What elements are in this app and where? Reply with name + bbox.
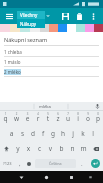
button[interactable]: f bbox=[38, 126, 48, 141]
staticText: 6 bbox=[53, 112, 63, 116]
button[interactable]: 7 bbox=[63, 111, 73, 126]
button[interactable] bbox=[40, 24, 49, 32]
button[interactable]: j bbox=[68, 126, 78, 141]
button[interactable]: d bbox=[28, 126, 38, 141]
button[interactable]: g bbox=[48, 126, 58, 141]
staticText: 8 bbox=[73, 112, 83, 116]
button[interactable]: 1 máslo bbox=[4, 59, 99, 69]
staticText: Všechny bbox=[20, 12, 38, 18]
staticText: r bbox=[33, 114, 43, 123]
button[interactable]: Čeština bbox=[35, 159, 76, 168]
button[interactable]: 3 bbox=[22, 111, 33, 126]
staticText: 4 bbox=[33, 112, 43, 116]
staticText: Čeština bbox=[49, 161, 62, 166]
staticText: a bbox=[6, 129, 17, 138]
button[interactable]: n bbox=[67, 141, 78, 156]
staticText: 2 mléko bbox=[4, 69, 21, 75]
button[interactable]: ?123 bbox=[0, 156, 15, 171]
staticText: v bbox=[45, 144, 56, 153]
button[interactable]: 6 bbox=[53, 111, 63, 126]
button[interactable]: k bbox=[78, 126, 88, 141]
button[interactable]: Emoji bbox=[24, 156, 34, 171]
button[interactable]: Uložit bbox=[58, 9, 72, 23]
staticText: 3 bbox=[22, 112, 33, 116]
button[interactable]: Navigace bbox=[3, 10, 15, 22]
button[interactable]: 9 bbox=[83, 111, 93, 126]
staticText: Nákupní seznam bbox=[4, 36, 48, 43]
staticText: x bbox=[23, 144, 34, 153]
button[interactable]: h bbox=[58, 126, 68, 141]
button[interactable] bbox=[30, 24, 40, 32]
button[interactable]: Smazat bbox=[89, 141, 103, 156]
button[interactable]: . bbox=[77, 156, 87, 171]
staticText: , bbox=[19, 160, 21, 168]
button[interactable]: 2 mléko bbox=[4, 69, 99, 79]
button[interactable]: 1 chleba bbox=[4, 49, 99, 59]
button[interactable]: l bbox=[88, 126, 98, 141]
button[interactable]: c bbox=[34, 141, 45, 156]
staticText: s bbox=[17, 129, 28, 138]
button[interactable]: x bbox=[23, 141, 34, 156]
staticText: Nákupy bbox=[20, 21, 37, 27]
button[interactable]: v bbox=[45, 141, 56, 156]
button[interactable]: 2 bbox=[11, 111, 22, 126]
staticText: e bbox=[22, 114, 33, 123]
staticText: k bbox=[78, 129, 88, 138]
staticText: 1 bbox=[0, 112, 11, 116]
staticText: mléka bbox=[39, 104, 51, 110]
staticText: 7 bbox=[63, 112, 73, 116]
staticText: 0 bbox=[93, 112, 103, 116]
staticText: n bbox=[67, 144, 78, 153]
staticText: y bbox=[13, 144, 23, 153]
staticText: z bbox=[53, 114, 63, 123]
button[interactable]: Nákupy bbox=[17, 19, 45, 28]
button[interactable]: 0 bbox=[93, 111, 103, 126]
button[interactable]: Všechny bbox=[17, 11, 45, 19]
button[interactable]: Shift bbox=[0, 141, 13, 156]
staticText: i bbox=[73, 114, 83, 123]
staticText: 2 bbox=[11, 112, 22, 116]
button[interactable]: mléka bbox=[39, 104, 51, 110]
button[interactable]: Domů bbox=[41, 172, 52, 183]
staticText: c bbox=[34, 144, 45, 153]
button[interactable]: Klávesnice bbox=[85, 172, 96, 183]
staticText: 5 bbox=[43, 112, 53, 116]
button[interactable]: Smazat bbox=[72, 9, 86, 23]
button[interactable]: Enter bbox=[87, 156, 103, 171]
staticText: p bbox=[93, 114, 103, 123]
button[interactable]: a bbox=[6, 126, 17, 141]
button[interactable]: , bbox=[15, 156, 24, 171]
staticText: 9 bbox=[83, 112, 93, 116]
button[interactable]: 8 bbox=[73, 111, 83, 126]
button[interactable] bbox=[10, 24, 20, 32]
button[interactable]: y bbox=[13, 141, 23, 156]
button[interactable]: Hlasové zadávání bbox=[91, 102, 103, 111]
button[interactable]: 5 bbox=[43, 111, 53, 126]
button[interactable] bbox=[20, 24, 30, 32]
staticText: l bbox=[88, 129, 98, 138]
staticText: m bbox=[78, 144, 89, 153]
staticText: g bbox=[48, 129, 58, 138]
staticText: d bbox=[28, 129, 38, 138]
button[interactable]: s bbox=[17, 126, 28, 141]
button[interactable]: Přehled bbox=[66, 172, 77, 183]
button[interactable]: 4 bbox=[33, 111, 43, 126]
staticText: . bbox=[81, 160, 83, 168]
button[interactable]: Zpět bbox=[16, 172, 27, 183]
button[interactable]: b bbox=[56, 141, 67, 156]
staticText: u bbox=[63, 114, 73, 123]
button[interactable]: 1 bbox=[0, 111, 11, 126]
button[interactable]: Více bbox=[86, 9, 100, 23]
button[interactable]: m bbox=[78, 141, 89, 156]
staticText: w bbox=[11, 114, 22, 123]
staticText: 1 chleba bbox=[4, 49, 22, 55]
staticText: t bbox=[43, 114, 53, 123]
staticText: o bbox=[83, 114, 93, 123]
